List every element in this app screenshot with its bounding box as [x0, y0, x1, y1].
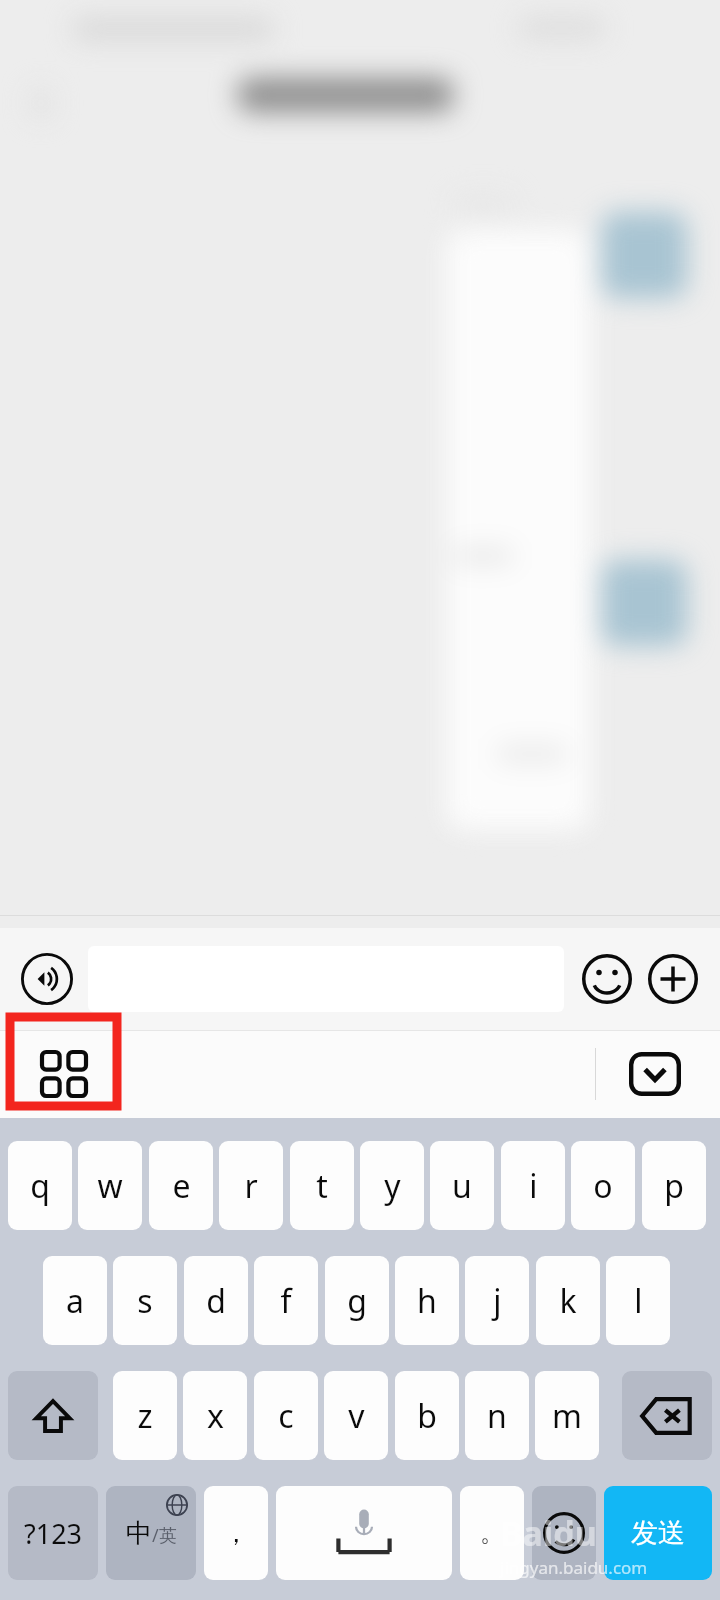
button[interactable]: q: [8, 1141, 72, 1230]
button[interactable]: g: [325, 1256, 389, 1345]
staticText: 发送: [631, 1516, 685, 1550]
staticText: e: [172, 1164, 191, 1208]
staticText: o: [593, 1164, 613, 1208]
staticText: k: [559, 1279, 577, 1323]
button[interactable]: Voice input: [18, 950, 76, 1008]
staticText: d: [206, 1279, 226, 1323]
button[interactable]: z: [113, 1371, 177, 1460]
staticText: b: [417, 1394, 437, 1438]
staticText: r: [244, 1164, 258, 1208]
button[interactable]: Shift: [8, 1371, 98, 1460]
button[interactable]: Comma: [204, 1486, 268, 1580]
button[interactable]: Space: [276, 1486, 452, 1580]
button[interactable]: v: [324, 1371, 388, 1460]
button[interactable]: o: [571, 1141, 635, 1230]
button[interactable]: Send: [604, 1486, 712, 1580]
staticText: n: [487, 1394, 507, 1438]
button[interactable]: c: [254, 1371, 318, 1460]
staticText: /英: [152, 1523, 177, 1548]
staticText: j: [493, 1279, 502, 1323]
staticText: t: [316, 1164, 328, 1208]
button[interactable]: Emoji: [578, 950, 636, 1008]
staticText: p: [664, 1164, 684, 1208]
button[interactable]: i: [501, 1141, 565, 1230]
staticText: z: [137, 1394, 153, 1438]
staticText: m: [552, 1394, 582, 1438]
staticText: h: [417, 1279, 437, 1323]
button[interactable]: k: [536, 1256, 600, 1345]
staticText: u: [452, 1164, 472, 1208]
button[interactable]: p: [642, 1141, 706, 1230]
button[interactable]: s: [113, 1256, 177, 1345]
button[interactable]: t: [290, 1141, 354, 1230]
staticText: g: [347, 1279, 367, 1323]
staticText: 中: [126, 1517, 152, 1550]
staticText: ?123: [24, 1515, 83, 1552]
button[interactable]: w: [78, 1141, 142, 1230]
button[interactable]: h: [395, 1256, 459, 1345]
staticText: v: [348, 1394, 365, 1438]
button[interactable]: Hide keyboard: [618, 1043, 692, 1105]
button[interactable]: u: [430, 1141, 494, 1230]
staticText: ，: [223, 1517, 249, 1550]
staticText: a: [66, 1279, 84, 1323]
staticText: w: [97, 1164, 123, 1208]
button[interactable]: r: [219, 1141, 283, 1230]
button[interactable]: n: [465, 1371, 529, 1460]
button[interactable]: e: [149, 1141, 213, 1230]
button[interactable]: m: [535, 1371, 599, 1460]
button[interactable]: Symbols: [8, 1486, 98, 1580]
button[interactable]: l: [606, 1256, 670, 1345]
staticText: l: [634, 1279, 643, 1323]
button[interactable]: Emoji: [532, 1486, 596, 1580]
button[interactable]: d: [184, 1256, 248, 1345]
button[interactable]: More: [644, 950, 702, 1008]
button[interactable]: Keyboard tools: [10, 1030, 117, 1118]
staticText: Baidu: [500, 1510, 597, 1556]
staticText: s: [137, 1279, 153, 1323]
staticText: q: [30, 1164, 50, 1208]
button[interactable]: b: [395, 1371, 459, 1460]
staticText: c: [278, 1394, 294, 1438]
staticText: x: [207, 1394, 224, 1438]
staticText: 。: [480, 1518, 504, 1548]
staticText: i: [529, 1164, 538, 1208]
button[interactable]: x: [183, 1371, 247, 1460]
button[interactable]: j: [465, 1256, 529, 1345]
button[interactable]: f: [254, 1256, 318, 1345]
button[interactable]: Language: [106, 1486, 196, 1580]
button[interactable]: Backspace: [622, 1371, 712, 1460]
button[interactable]: y: [360, 1141, 424, 1230]
button[interactable]: Period: [460, 1486, 524, 1580]
staticText: f: [280, 1279, 292, 1323]
button[interactable]: a: [43, 1256, 107, 1345]
staticText: y: [384, 1164, 401, 1208]
staticText: jingyan.baidu.com: [500, 1556, 648, 1579]
